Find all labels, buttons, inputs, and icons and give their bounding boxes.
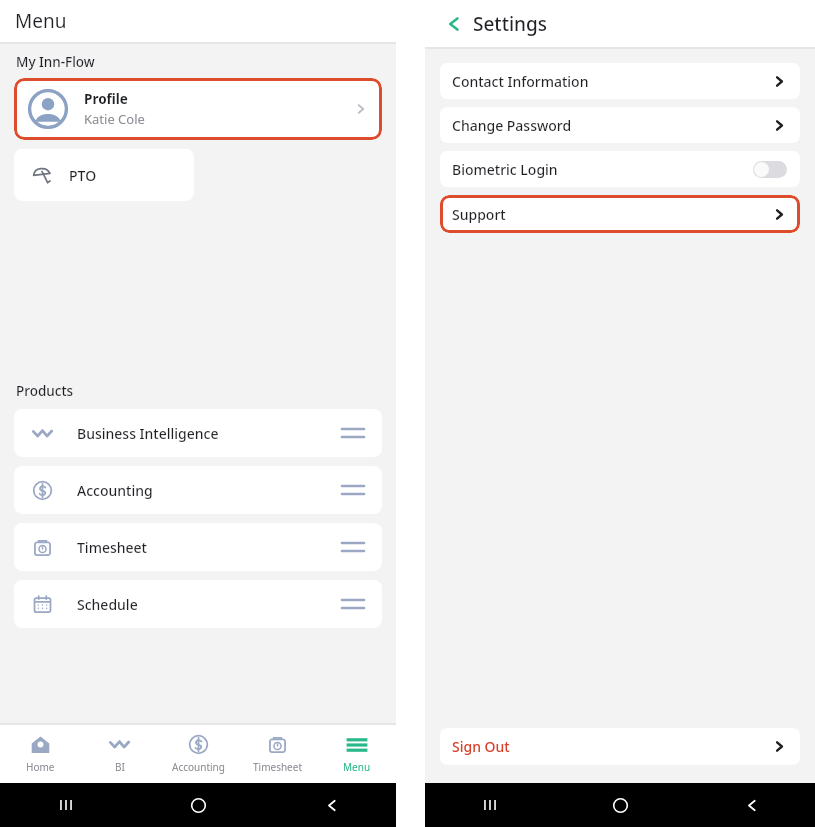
staticText: Accounting <box>77 481 153 500</box>
button[interactable]: Change Password <box>440 107 800 143</box>
staticText: Business Intelligence <box>77 424 219 443</box>
button[interactable]: Back <box>439 11 465 37</box>
staticText: Menu <box>15 8 67 34</box>
staticText: Accounting <box>172 760 225 774</box>
staticText: Timesheet <box>253 760 302 774</box>
button[interactable]: Menu <box>317 725 396 783</box>
staticText: BI <box>115 760 125 774</box>
staticText: Timesheet <box>77 538 147 557</box>
staticText: Support <box>452 205 506 224</box>
button[interactable]: Timesheet <box>14 523 382 571</box>
button[interactable]: Contact Information <box>440 63 800 99</box>
staticText: Sign Out <box>452 737 510 756</box>
button[interactable]: Accounting <box>14 466 382 514</box>
staticText: Katie Cole <box>84 110 145 128</box>
button[interactable]: Schedule <box>14 580 382 628</box>
staticText: Change Password <box>452 116 572 135</box>
staticText: Settings <box>473 11 547 37</box>
button[interactable]: Accounting <box>159 725 238 783</box>
button[interactable]: PTO <box>14 149 194 201</box>
button[interactable]: Sign Out <box>440 728 800 765</box>
button[interactable]: Timesheet <box>238 725 317 783</box>
staticText: My Inn-Flow <box>16 53 95 71</box>
button[interactable]: Home <box>0 725 80 783</box>
staticText: PTO <box>69 166 97 185</box>
button[interactable]: BI <box>80 725 159 783</box>
button[interactable]: Business Intelligence <box>14 409 382 457</box>
button[interactable]: Profile <box>14 78 382 140</box>
button[interactable]: Biometric Login <box>440 151 800 187</box>
staticText: Home <box>26 760 55 774</box>
button[interactable]: Support <box>440 195 800 233</box>
staticText: Biometric Login <box>452 160 558 179</box>
staticText: Contact Information <box>452 72 589 91</box>
staticText: Schedule <box>77 595 138 614</box>
staticText: Menu <box>343 760 371 774</box>
staticText: Profile <box>84 90 128 108</box>
staticText: Products <box>16 382 74 400</box>
